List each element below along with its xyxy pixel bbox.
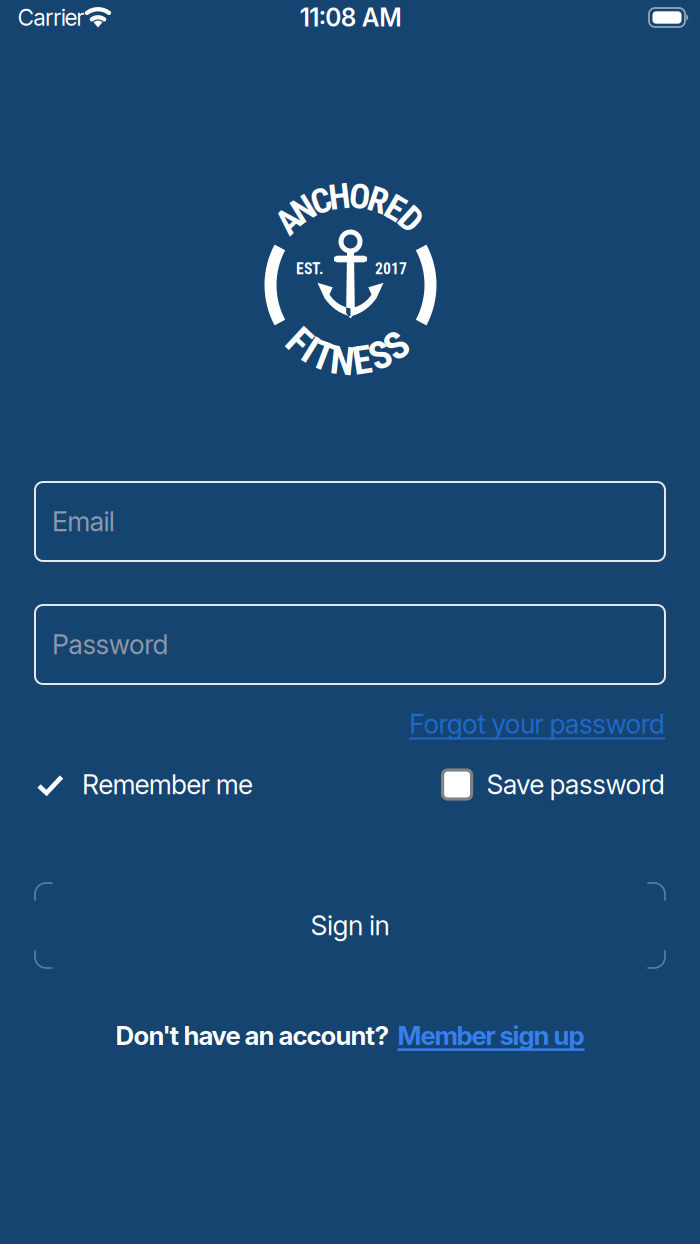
staticText: Password xyxy=(52,628,168,661)
staticText: S xyxy=(386,323,407,368)
staticText: N xyxy=(293,189,315,230)
staticText: Carrier xyxy=(17,4,84,31)
staticText: Forgot your password xyxy=(409,708,665,740)
staticText: Remember me xyxy=(82,768,253,801)
staticText: O xyxy=(349,176,370,217)
button[interactable]: Sign in xyxy=(35,883,665,968)
staticText: C xyxy=(311,180,331,222)
staticText: E xyxy=(353,338,372,383)
staticText: 11:08 AM xyxy=(300,3,401,32)
staticText: D xyxy=(401,199,421,240)
staticText: E xyxy=(387,187,404,229)
button[interactable]: Save password xyxy=(443,768,665,801)
staticText: Email xyxy=(52,505,115,538)
staticText: H xyxy=(329,176,351,217)
button[interactable]: Password xyxy=(35,605,665,684)
staticText: T xyxy=(312,334,333,379)
button[interactable]: Member sign up xyxy=(397,1020,584,1051)
button[interactable]: Email xyxy=(35,482,665,561)
button[interactable]: Forgot your password xyxy=(409,708,665,740)
staticText: A xyxy=(278,200,299,242)
staticText: Member sign up xyxy=(397,1020,584,1051)
staticText: N xyxy=(330,338,354,384)
staticText: R xyxy=(368,180,388,221)
staticText: F xyxy=(289,318,307,364)
staticText: Save password xyxy=(487,768,665,801)
staticText: I xyxy=(305,327,315,372)
staticText: Sign in xyxy=(310,909,389,942)
button[interactable]: Remember me xyxy=(37,768,253,801)
staticText: 2017 xyxy=(375,260,407,278)
staticText: Don't have an account? xyxy=(115,1020,389,1051)
staticText: EST. xyxy=(296,260,324,278)
staticText: S xyxy=(370,333,391,378)
